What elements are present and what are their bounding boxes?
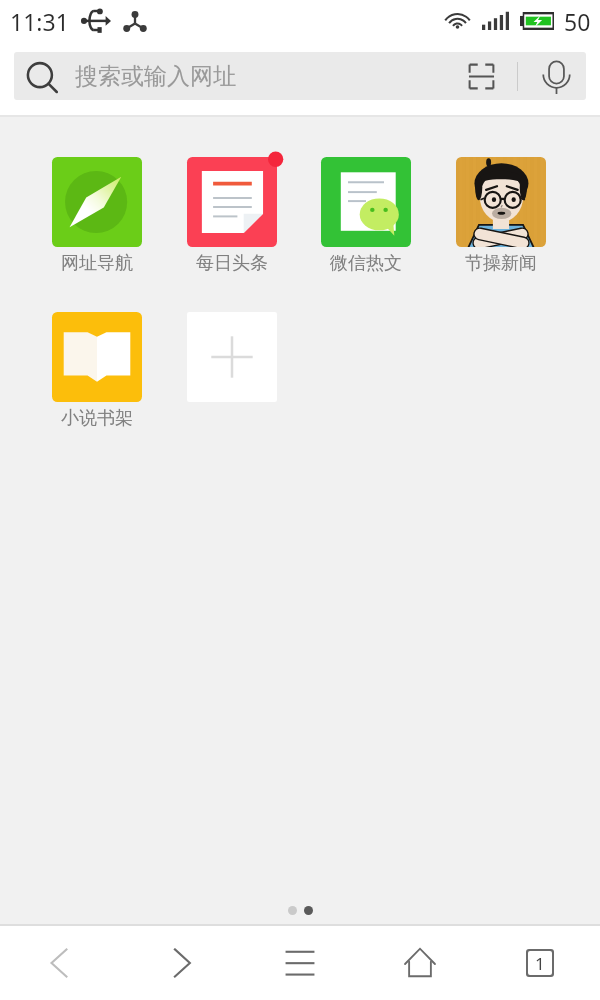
staticText: 节操新闻 xyxy=(465,252,537,275)
button[interactable]: 每日头条 xyxy=(175,157,289,275)
button[interactable]: Tabs xyxy=(480,926,600,1000)
staticText: 微信热文 xyxy=(330,252,402,275)
staticText: 11:31 xyxy=(10,6,69,37)
staticText: 搜索或输入网址 xyxy=(75,62,236,91)
button[interactable] xyxy=(175,312,289,402)
button[interactable]: 节操新闻 xyxy=(444,157,558,275)
button[interactable]: 网址导航 xyxy=(40,157,154,275)
button[interactable]: Home xyxy=(360,926,480,1000)
button[interactable]: Forward xyxy=(120,926,240,1000)
button[interactable]: 小说书架 xyxy=(40,312,154,430)
staticText: 1 xyxy=(535,952,545,975)
button[interactable]: 微信热文 xyxy=(309,157,423,275)
staticText: 每日头条 xyxy=(196,252,268,275)
button[interactable]: Back xyxy=(0,926,120,1000)
button[interactable]: Menu xyxy=(240,926,360,1000)
button[interactable]: 搜索或输入网址 xyxy=(14,52,586,100)
staticText: 50 xyxy=(564,6,591,37)
staticText: 小说书架 xyxy=(61,407,133,430)
button[interactable]: Voice search xyxy=(543,61,570,94)
button[interactable]: Scan QR code xyxy=(468,63,495,90)
staticText: 网址导航 xyxy=(61,252,133,275)
